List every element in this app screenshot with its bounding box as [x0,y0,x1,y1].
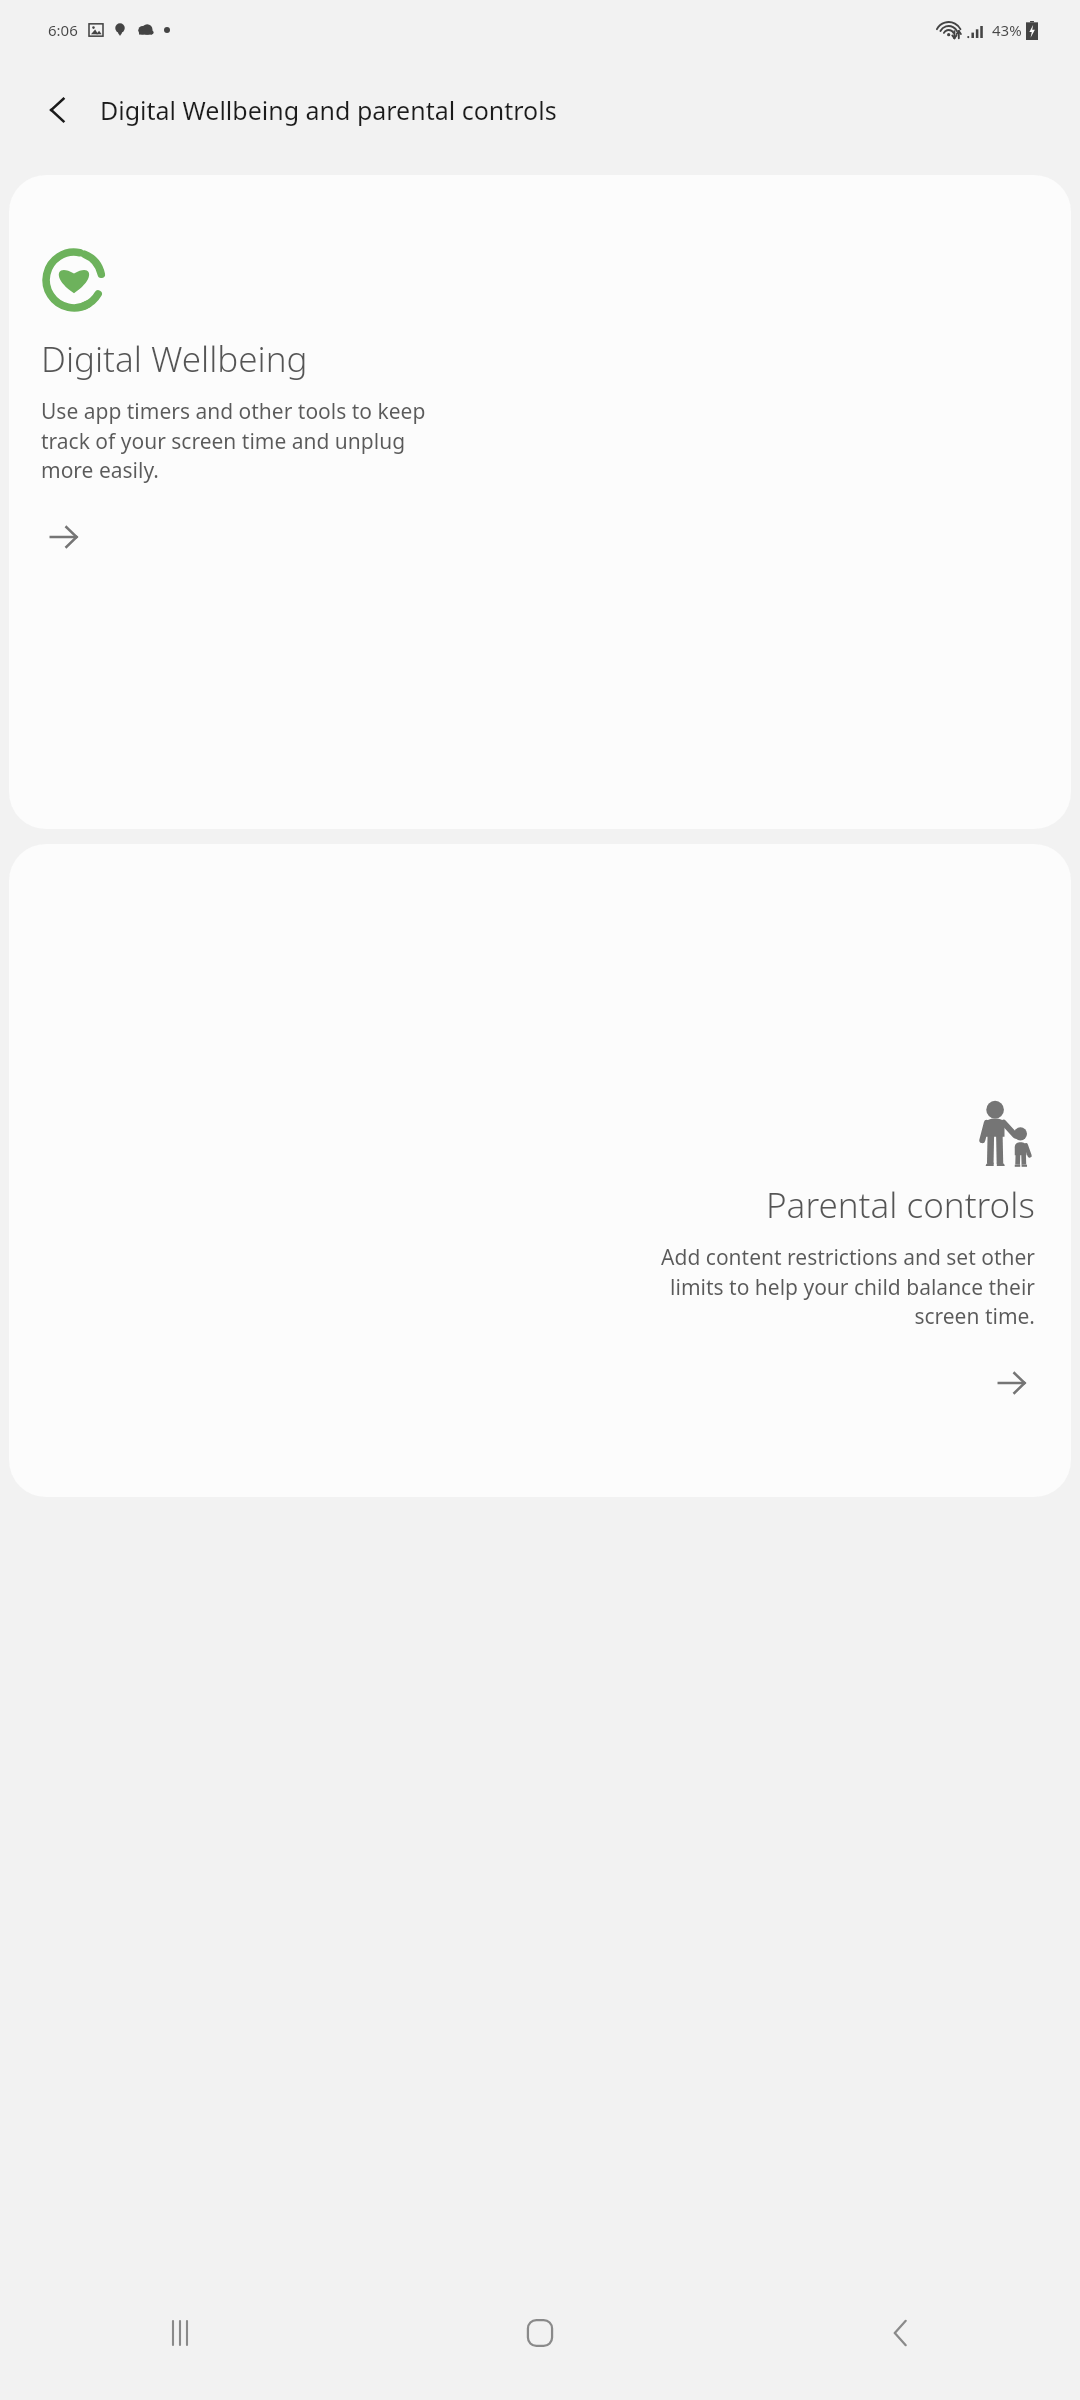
button[interactable]: Recent apps [0,2265,360,2400]
staticText: Add content restrictions and set other l… [623,1243,1035,1330]
button[interactable]: Parental controls [9,844,1071,1497]
staticText: Digital Wellbeing [41,335,308,383]
staticText: Use app timers and other tools to keep t… [41,397,453,484]
button[interactable]: Home [360,2265,720,2400]
staticText: Parental controls [766,1181,1035,1229]
button[interactable]: Digital Wellbeing [9,175,1071,829]
button[interactable]: Back [30,82,86,138]
staticText: Digital Wellbeing and parental controls [100,93,557,127]
staticText: 43% [992,20,1022,40]
button[interactable]: Back [720,2265,1080,2400]
button[interactable]: Open Digital Wellbeing [41,514,87,560]
staticText: 6:06 [48,20,78,40]
button[interactable]: Open Parental controls [989,1360,1035,1406]
